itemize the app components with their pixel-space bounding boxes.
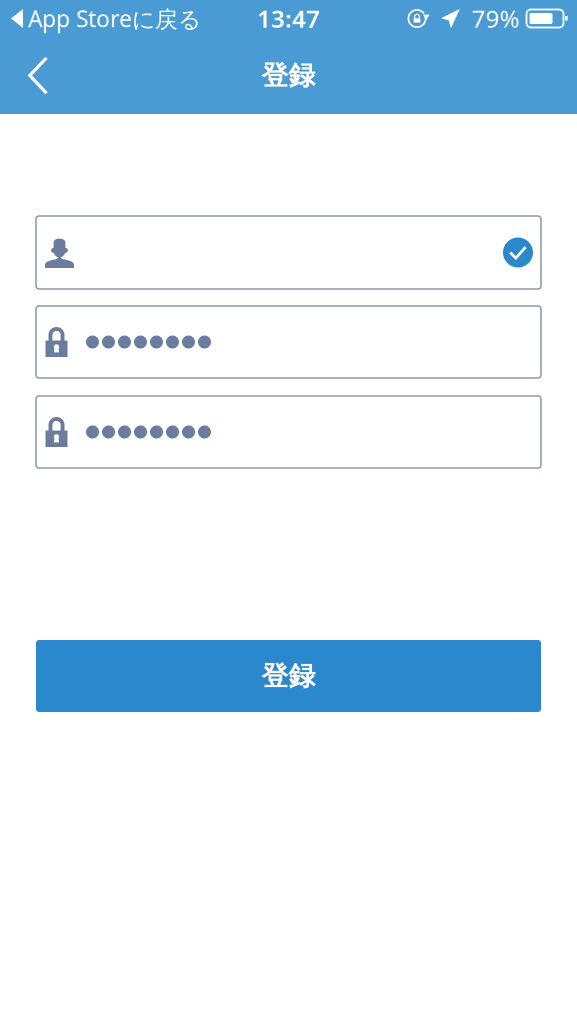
button[interactable] (36, 306, 541, 378)
button[interactable] (36, 216, 541, 289)
staticText: 79% (471, 3, 519, 34)
staticText: 13:47 (257, 3, 320, 34)
button[interactable]: Back (0, 45, 72, 105)
button[interactable]: 登録 (36, 640, 541, 712)
staticText: 登録 (261, 59, 315, 92)
button[interactable] (36, 396, 541, 468)
staticText: 登録 (261, 660, 315, 692)
staticText: App Storeに戻る (28, 3, 201, 34)
